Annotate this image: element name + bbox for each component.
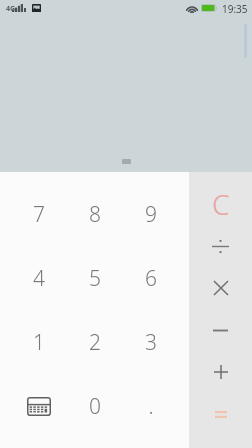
- button[interactable]: 3: [123, 310, 179, 374]
- staticText: 9: [145, 200, 157, 229]
- button[interactable]: 0: [67, 374, 123, 438]
- staticText: 2: [89, 328, 101, 357]
- staticText: 0: [89, 392, 101, 421]
- button[interactable]: Add: [189, 351, 252, 393]
- button[interactable]: Equals: [189, 393, 252, 435]
- button[interactable]: 9: [123, 182, 179, 246]
- staticText: 7: [33, 200, 45, 229]
- staticText: 1: [33, 328, 45, 357]
- staticText: 4G: [6, 4, 16, 14]
- staticText: 6: [145, 264, 157, 293]
- staticText: C: [212, 185, 230, 223]
- button[interactable]: 7: [10, 182, 67, 246]
- button[interactable]: 8: [67, 182, 123, 246]
- button[interactable]: 2: [67, 310, 123, 374]
- staticText: 4: [33, 264, 45, 293]
- button[interactable]: Divide: [189, 225, 252, 267]
- staticText: 8: [89, 200, 101, 229]
- button[interactable]: Subtract: [189, 309, 252, 351]
- button[interactable]: .: [123, 374, 179, 438]
- staticText: 5: [89, 264, 101, 293]
- button[interactable]: 5: [67, 246, 123, 310]
- button[interactable]: 6: [123, 246, 179, 310]
- button[interactable]: Scientific calculator: [10, 374, 67, 438]
- button[interactable]: 4: [10, 246, 67, 310]
- button[interactable]: Multiply: [189, 267, 252, 309]
- staticText: 3: [145, 328, 157, 357]
- button[interactable]: 1: [10, 310, 67, 374]
- button[interactable]: Clear: [189, 183, 252, 225]
- staticText: 19:35: [222, 2, 248, 16]
- staticText: .: [148, 392, 154, 421]
